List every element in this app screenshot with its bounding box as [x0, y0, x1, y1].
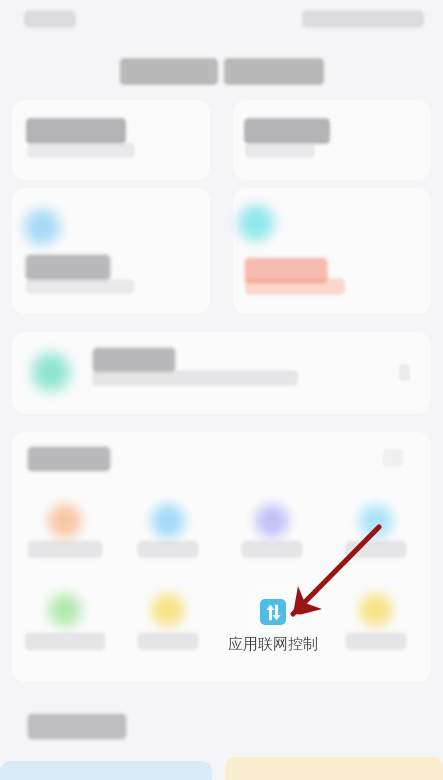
- button[interactable]: [12, 332, 431, 414]
- button[interactable]: [233, 188, 431, 314]
- staticText: 应用联网控制: [228, 635, 318, 654]
- button[interactable]: [233, 100, 431, 180]
- button[interactable]: 应用联网控制: [260, 599, 286, 625]
- button[interactable]: [12, 188, 210, 314]
- button[interactable]: [225, 757, 443, 780]
- button[interactable]: [12, 100, 210, 180]
